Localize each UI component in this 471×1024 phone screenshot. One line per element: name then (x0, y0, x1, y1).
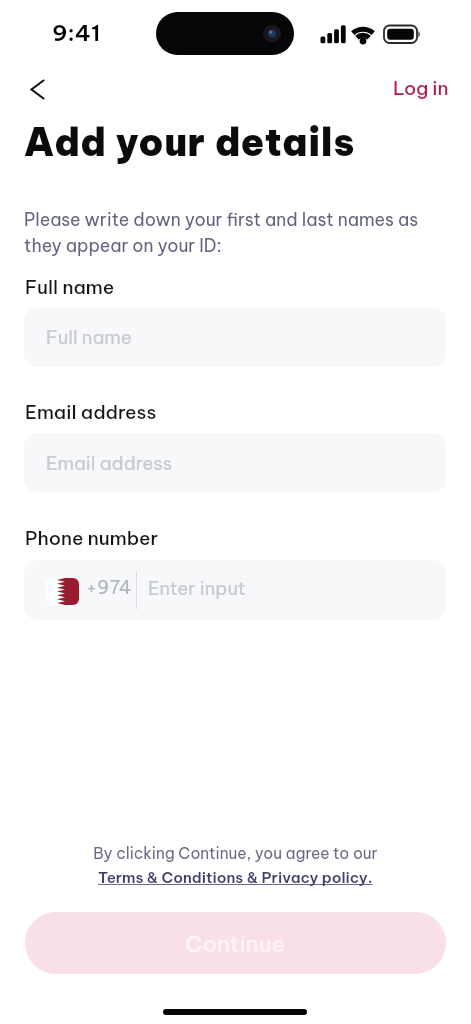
button[interactable] (24, 560, 446, 620)
staticText: Full name (25, 275, 115, 299)
button[interactable] (24, 307, 446, 367)
staticText: 9:41 (52, 18, 101, 46)
staticText: Enter input (148, 576, 246, 599)
button[interactable]: Log in (393, 76, 449, 100)
staticText: +974 (86, 576, 132, 599)
button[interactable] (20, 73, 54, 107)
staticText: Continue (185, 929, 286, 957)
button[interactable] (24, 433, 446, 493)
staticText: Full name (46, 325, 132, 348)
button[interactable]: Terms & Conditions & Privacy policy. (98, 868, 373, 887)
staticText: Please write down your first and last na… (24, 208, 419, 256)
staticText: Email address (46, 451, 173, 474)
staticText: Phone number (25, 526, 159, 550)
button[interactable]: Continue (25, 912, 446, 974)
staticText: Add your details (24, 118, 355, 166)
staticText: Email address (25, 400, 157, 424)
staticText: By clicking Continue, you agree to our (0, 843, 471, 863)
